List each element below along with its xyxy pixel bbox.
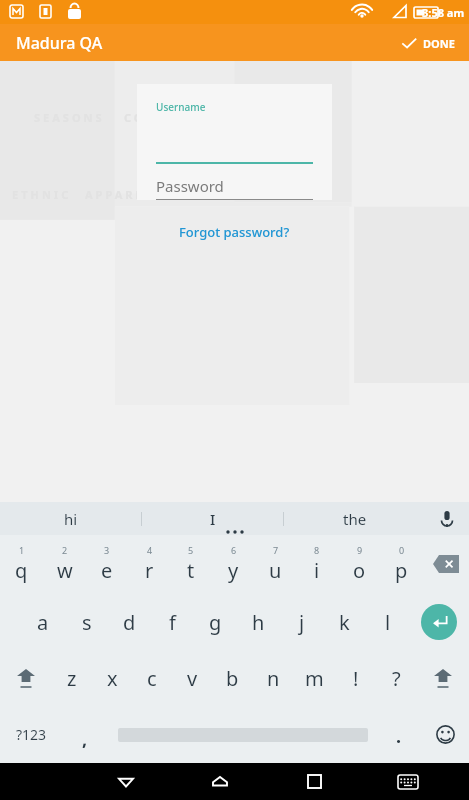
button[interactable]: ? xyxy=(376,651,417,706)
button[interactable]: Backspace xyxy=(422,535,469,593)
button[interactable]: 9 xyxy=(338,535,380,593)
button[interactable]: v xyxy=(172,651,212,706)
staticText: 0 xyxy=(399,544,405,556)
button[interactable]: l xyxy=(366,593,409,651)
button[interactable]: z xyxy=(52,651,92,706)
staticText: 3 xyxy=(104,544,110,556)
button[interactable]: the xyxy=(284,502,425,535)
button[interactable]: Hide keyboard xyxy=(361,763,455,800)
button[interactable]: Shift xyxy=(417,651,469,706)
staticText: j xyxy=(299,609,305,636)
staticText: 5 xyxy=(188,544,194,556)
button[interactable]: Shift xyxy=(0,651,52,706)
staticText: 3:58 am xyxy=(422,5,465,20)
staticText: a xyxy=(37,609,49,636)
staticText: u xyxy=(269,557,282,584)
button[interactable]: c xyxy=(132,651,172,706)
button[interactable]: x xyxy=(92,651,132,706)
staticText: 7 xyxy=(273,544,279,556)
staticText: . xyxy=(396,724,402,749)
staticText: t xyxy=(187,557,195,584)
button[interactable]: 0 xyxy=(380,535,422,593)
staticText: z xyxy=(67,665,77,692)
staticText: h xyxy=(252,609,265,636)
staticText: hi xyxy=(64,509,78,529)
staticText: ! xyxy=(353,665,359,692)
button[interactable]: m xyxy=(294,651,335,706)
staticText: c xyxy=(147,665,157,692)
staticText: APPAREL xyxy=(85,187,154,202)
staticText: DONE xyxy=(423,36,455,51)
button[interactable]: 8 xyxy=(296,535,338,593)
staticText: e xyxy=(101,557,113,584)
button[interactable]: Recents xyxy=(267,763,361,800)
staticText: Username xyxy=(156,100,206,114)
button[interactable]: Home xyxy=(173,763,267,800)
staticText: Madura QA xyxy=(16,32,103,54)
button[interactable] xyxy=(156,134,313,164)
staticText: COLOURS xyxy=(124,110,197,125)
button[interactable]: a xyxy=(21,593,65,651)
button[interactable]: DONE xyxy=(387,29,469,57)
staticText: 2 xyxy=(62,544,68,556)
staticText: 6 xyxy=(231,544,237,556)
button[interactable]: 3 xyxy=(86,535,128,593)
staticText: 1 xyxy=(19,544,25,556)
button[interactable]: 7 xyxy=(254,535,296,593)
button[interactable]: j xyxy=(280,593,323,651)
button[interactable]: h xyxy=(237,593,280,651)
staticText: , xyxy=(82,727,88,752)
staticText: ? xyxy=(392,665,401,692)
button[interactable]: Emoji xyxy=(421,706,469,763)
button[interactable]: Enter xyxy=(409,593,469,651)
button[interactable]: . xyxy=(377,706,421,763)
button[interactable]: 6 xyxy=(212,535,254,593)
staticText: k xyxy=(339,609,350,636)
button[interactable]: s xyxy=(65,593,108,651)
staticText: b xyxy=(226,665,239,692)
button[interactable]: Voice input xyxy=(425,502,469,535)
staticText: g xyxy=(209,609,222,636)
button[interactable]: Password xyxy=(156,172,313,200)
staticText: the xyxy=(343,509,367,529)
button[interactable]: I xyxy=(142,502,283,535)
staticText: n xyxy=(267,665,280,692)
button[interactable]: n xyxy=(253,651,294,706)
staticText: x xyxy=(107,665,118,692)
button[interactable]: g xyxy=(194,593,237,651)
button[interactable]: 4 xyxy=(128,535,170,593)
staticText: 9 xyxy=(357,544,363,556)
button[interactable]: ! xyxy=(335,651,376,706)
button[interactable]: f xyxy=(151,593,194,651)
button[interactable]: d xyxy=(108,593,151,651)
staticText: v xyxy=(187,665,198,692)
staticText: Password xyxy=(156,176,224,196)
staticText: y xyxy=(228,557,239,584)
staticText: 4 xyxy=(147,544,153,556)
button[interactable]: Forgot password? xyxy=(171,219,298,245)
staticText: f xyxy=(169,609,176,636)
staticText: m xyxy=(305,665,324,692)
button[interactable]: Space xyxy=(108,706,377,763)
staticText: ?123 xyxy=(16,725,47,744)
staticText: I xyxy=(210,509,216,529)
button[interactable]: 5 xyxy=(170,535,212,593)
button[interactable]: , xyxy=(62,706,108,763)
staticText: p xyxy=(395,557,408,584)
staticText: Forgot password? xyxy=(179,223,290,241)
button[interactable]: hi xyxy=(0,502,141,535)
button[interactable]: 2 xyxy=(43,535,86,593)
staticText: i xyxy=(314,557,320,584)
staticText: l xyxy=(385,609,391,636)
button[interactable]: b xyxy=(212,651,253,706)
button[interactable]: k xyxy=(323,593,366,651)
staticText: s xyxy=(82,609,92,636)
staticText: r xyxy=(145,557,154,584)
button[interactable]: 1 xyxy=(0,535,43,593)
button[interactable]: ?123 xyxy=(0,706,62,763)
button[interactable]: Back xyxy=(79,763,173,800)
staticText: o xyxy=(353,557,366,584)
staticText: 8 xyxy=(314,544,320,556)
